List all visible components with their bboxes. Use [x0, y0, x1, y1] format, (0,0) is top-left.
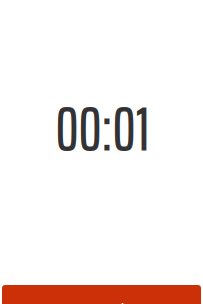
staticText: Cancel [78, 295, 124, 304]
button[interactable]: Cancel [2, 285, 201, 304]
staticText: 00:01 [55, 81, 149, 177]
